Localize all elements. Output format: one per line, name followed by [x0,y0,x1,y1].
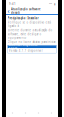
staticText: ‹ [7,7,9,15]
staticText: ••• ▮ [49,2,55,6]
button[interactable]: Barra de ferramentas [32,110,45,116]
button[interactable]: Barra de ferramentas [45,110,58,116]
staticText: Clique no ícone abaixo para iniciar. [7,40,56,44]
staticText: software, evite desligar o equipamento [7,32,41,40]
staticText: Versão 4.1.1 disponível [9,49,43,52]
staticText: Atualização software desati [11,7,41,15]
button[interactable]: Barra de ferramentas [19,110,32,116]
staticText: Atualizar dispositivo agora [9,43,38,50]
button[interactable]: Voltar [7,8,10,13]
staticText: corrente durante a atualização do [7,28,52,32]
staticText: Verifique se o dispositivo está ligado à [7,21,50,28]
staticText: Precipitação: Instalar [7,16,38,20]
button[interactable]: Barra de ferramentas [6,110,19,116]
staticText: 9:41 [9,2,16,6]
